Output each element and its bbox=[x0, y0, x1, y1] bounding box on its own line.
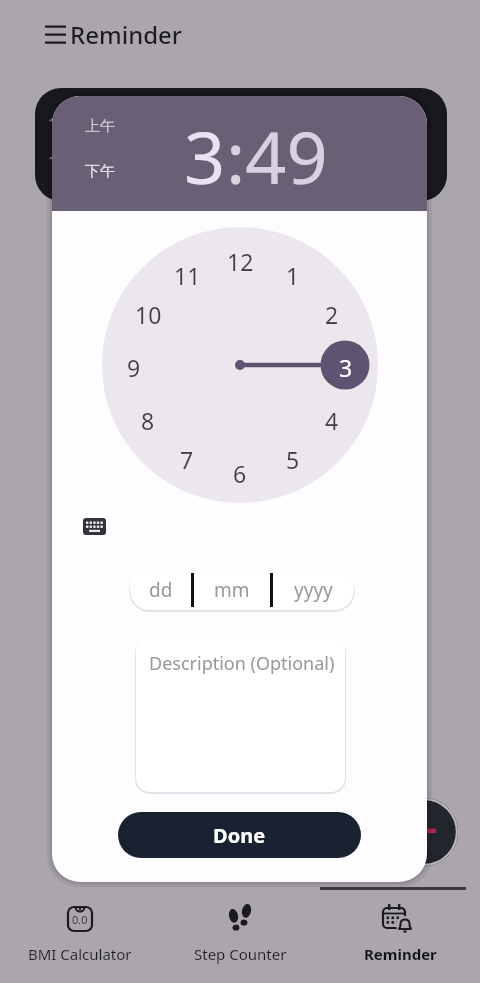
staticText: 1 bbox=[48, 113, 58, 135]
button[interactable]: yyyy bbox=[273, 569, 354, 610]
staticText: Step Counter bbox=[194, 944, 287, 964]
staticText: :49 bbox=[226, 107, 328, 205]
button[interactable] bbox=[38, 20, 74, 46]
staticText: 7 bbox=[180, 444, 194, 470]
staticText: Description (Optional) bbox=[149, 651, 335, 676]
staticText: 0.0 bbox=[72, 912, 88, 927]
button[interactable]: 下午 bbox=[85, 162, 115, 181]
button[interactable]: Step Counter bbox=[160, 891, 320, 983]
staticText: Done bbox=[213, 822, 266, 849]
staticText: mm bbox=[214, 577, 250, 603]
staticText: 9 bbox=[127, 352, 141, 378]
staticText: dd bbox=[149, 577, 173, 603]
staticText: Reminder bbox=[70, 18, 183, 51]
staticText: 11 bbox=[174, 260, 201, 286]
button[interactable]: Description (Optional) bbox=[136, 637, 345, 792]
staticText: 1 bbox=[286, 260, 300, 286]
button[interactable]: dd bbox=[130, 569, 191, 610]
staticText: 5 bbox=[286, 444, 300, 470]
button[interactable]: Done bbox=[118, 812, 361, 858]
staticText: 3 bbox=[339, 352, 353, 378]
button[interactable]: mm bbox=[194, 569, 270, 610]
button[interactable] bbox=[75, 514, 111, 540]
staticText: 2 bbox=[325, 299, 339, 325]
staticText: 6 bbox=[233, 458, 247, 484]
staticText: 10 bbox=[135, 299, 162, 325]
button[interactable] bbox=[390, 798, 458, 866]
staticText: Reminder bbox=[364, 944, 437, 964]
staticText: 8 bbox=[141, 405, 155, 431]
button[interactable]: 0.0 bbox=[0, 891, 160, 983]
staticText: 4 bbox=[325, 405, 339, 431]
staticText: 3 bbox=[184, 107, 226, 205]
button[interactable]: Reminder bbox=[320, 891, 480, 983]
staticText: yyyy bbox=[294, 577, 333, 603]
staticText: 12 bbox=[227, 246, 254, 272]
staticText: 1 bbox=[48, 151, 58, 173]
button[interactable]: 上午 bbox=[85, 117, 115, 136]
staticText: BMI Calculator bbox=[28, 944, 132, 964]
